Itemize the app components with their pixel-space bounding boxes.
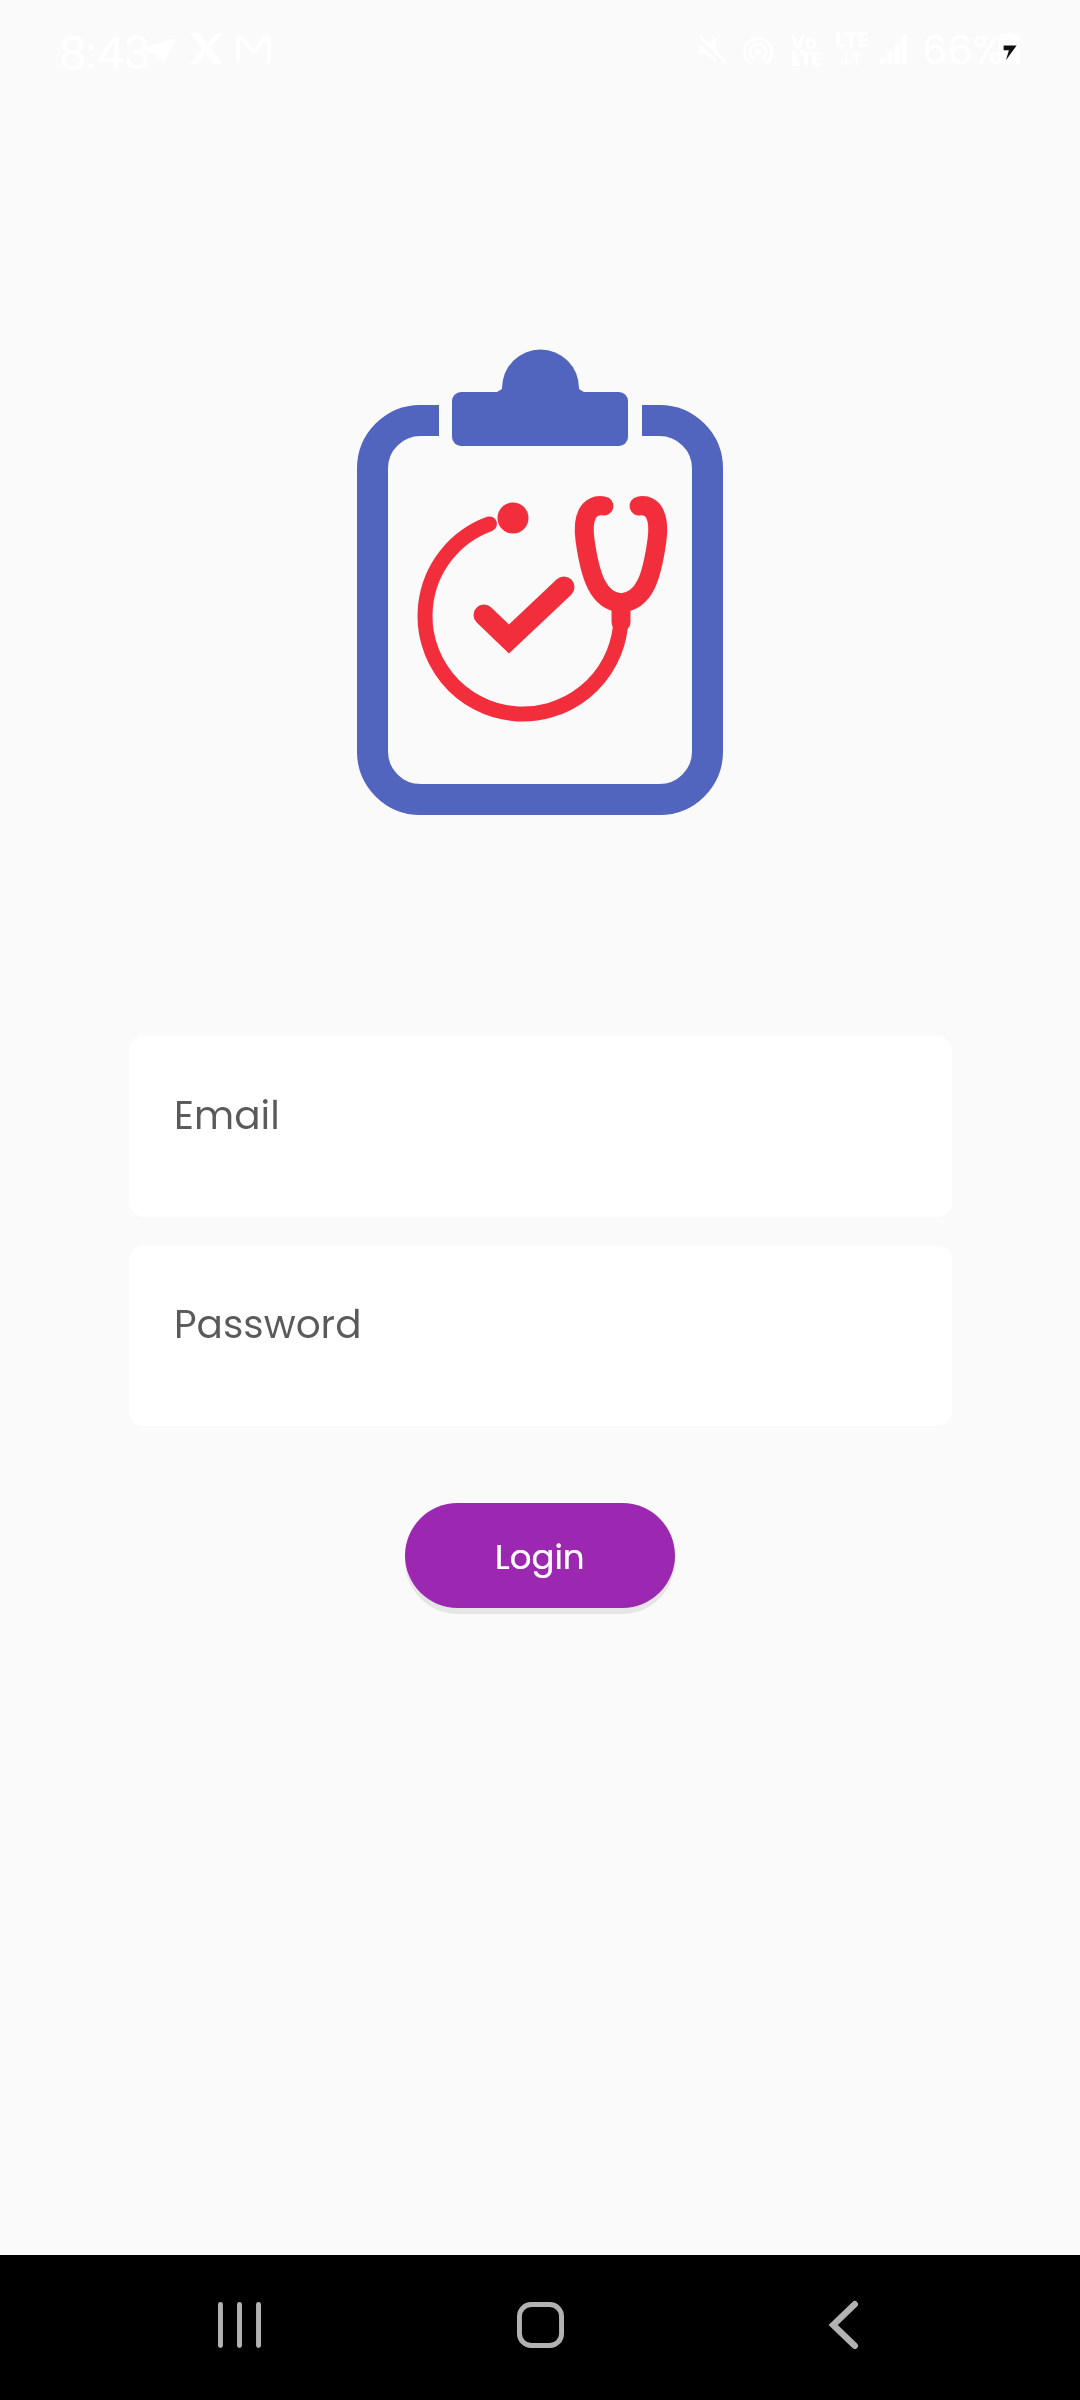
button[interactable]: Back [784,2262,904,2388]
button[interactable]: Login [405,1503,675,1608]
staticText: Email [174,1088,280,1143]
button[interactable]: Email [129,1036,952,1217]
staticText: Login [495,1533,585,1581]
staticText: 66% [922,22,1004,78]
button[interactable]: Password [129,1245,952,1426]
staticText: Password [174,1297,362,1352]
button[interactable]: Home [480,2262,600,2388]
button[interactable]: Recent apps [179,2262,299,2388]
